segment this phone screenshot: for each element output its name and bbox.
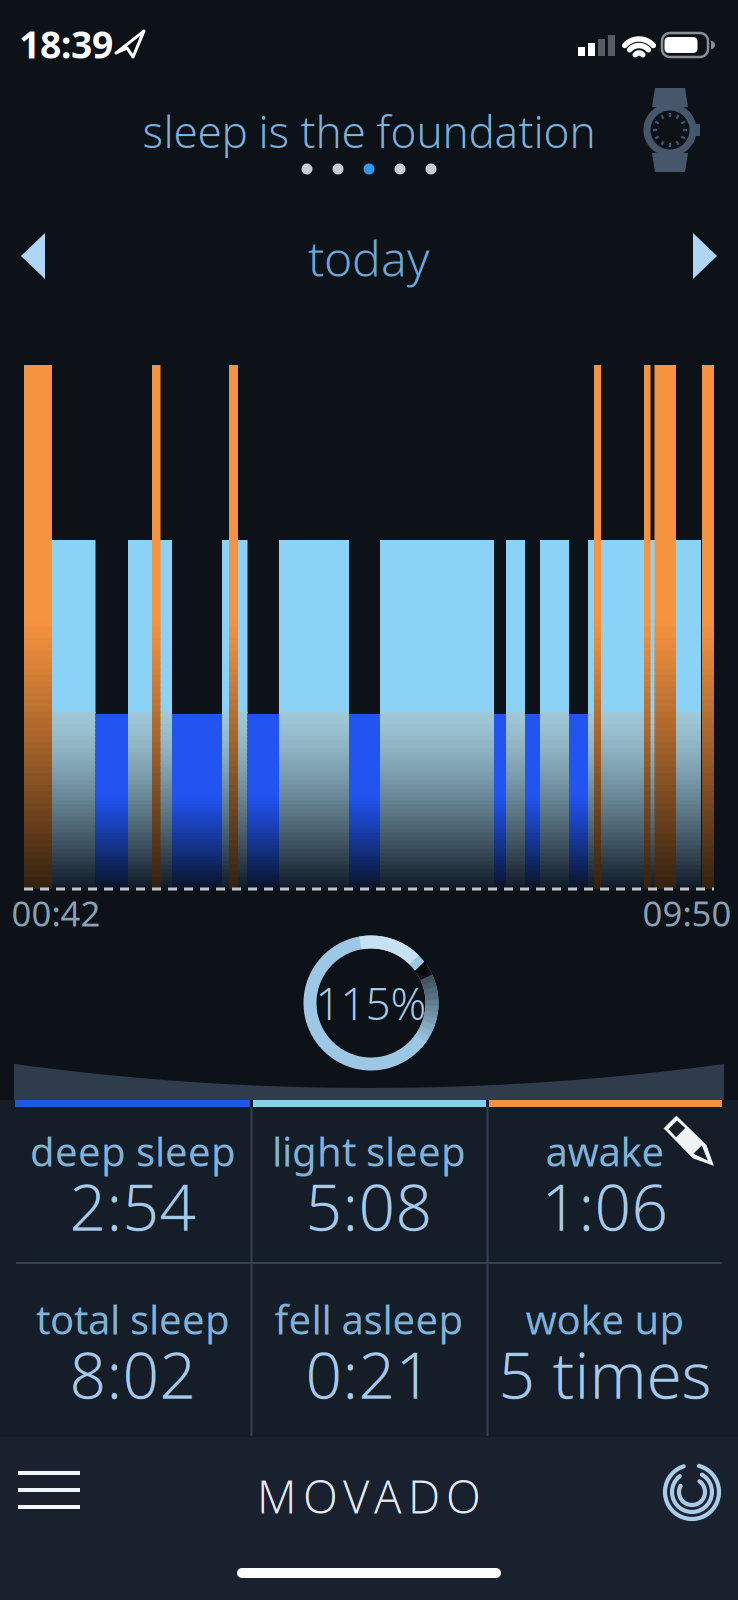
staticText: 8:02 bbox=[69, 1331, 196, 1416]
staticText: total sleep bbox=[36, 1292, 230, 1345]
button[interactable] bbox=[642, 88, 702, 172]
staticText: deep sleep bbox=[30, 1124, 236, 1177]
staticText: 5:08 bbox=[305, 1163, 432, 1248]
staticText: awake bbox=[545, 1124, 664, 1177]
staticText: 1:06 bbox=[541, 1163, 668, 1248]
staticText: 09:50 bbox=[642, 890, 731, 936]
button[interactable] bbox=[663, 1463, 721, 1521]
staticText: 0:21 bbox=[305, 1331, 432, 1416]
staticText: 00:42 bbox=[11, 890, 100, 936]
button[interactable] bbox=[668, 1118, 720, 1170]
staticText: 2:54 bbox=[69, 1163, 196, 1248]
staticText: 115% bbox=[315, 974, 426, 1032]
staticText: fell asleep bbox=[274, 1292, 463, 1345]
staticText: woke up bbox=[525, 1292, 684, 1345]
staticText: MOVADO bbox=[257, 1466, 481, 1526]
button[interactable] bbox=[18, 1471, 80, 1509]
staticText: today bbox=[308, 226, 430, 290]
button[interactable] bbox=[21, 233, 45, 279]
staticText: 5 times bbox=[498, 1331, 711, 1416]
button[interactable] bbox=[693, 233, 717, 279]
staticText: light sleep bbox=[272, 1124, 466, 1177]
staticText: 18:39 bbox=[19, 19, 113, 69]
staticText: sleep is the foundation bbox=[142, 102, 595, 160]
